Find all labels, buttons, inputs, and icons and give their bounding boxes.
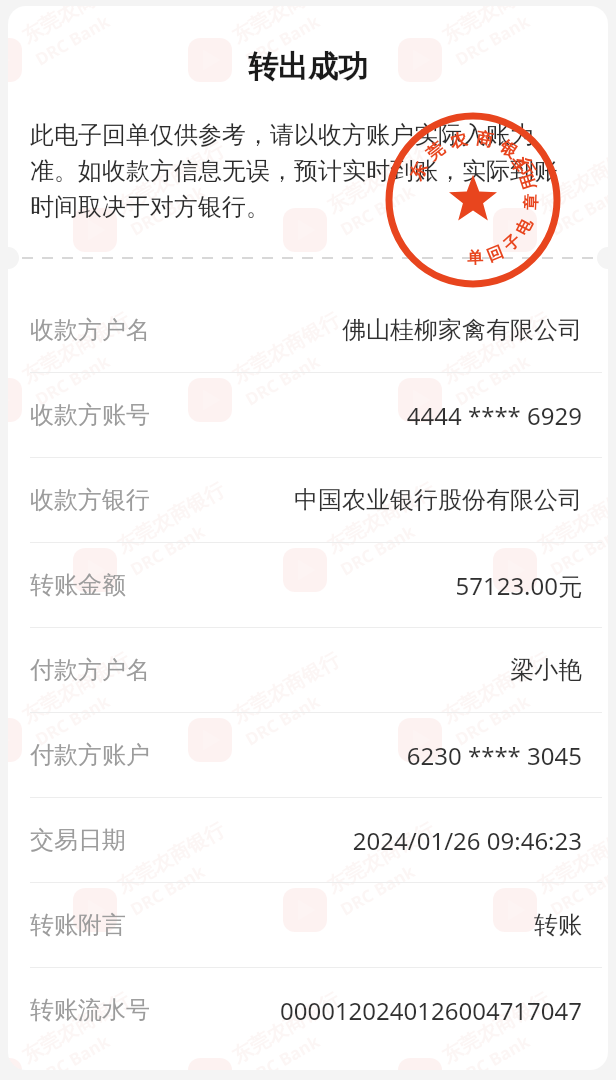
staticText: 付款方户名 [30,655,150,685]
staticText: 东莞农商银行 [227,6,344,49]
staticText: DRC Bank [31,1029,114,1070]
staticText: 子 [499,230,525,256]
staticText: DRC Bank [546,179,608,241]
staticText: DRC Bank [546,519,608,581]
staticText: DRC Bank [451,1029,534,1070]
button[interactable]: 交易日期 [8,798,608,882]
staticText: 东莞农商银行 [112,137,229,219]
staticText: 梁小艳 [510,655,582,685]
staticText: DRC Bank [126,519,209,581]
staticText: DRC Bank [241,689,324,751]
staticText: 东莞农商银行 [437,307,554,389]
staticText: 东莞农商银行 [437,6,554,49]
staticText: DRC Bank [126,859,209,921]
staticText: DRC Bank [31,349,114,411]
staticText: DRC Bank [241,1029,324,1070]
staticText: 中国农业银行股份有限公司 [294,485,582,515]
other: 电子回单专用章 [383,110,563,290]
staticText: DRC Bank [336,519,419,581]
staticText: 专 [506,151,532,176]
staticText: DRC Bank [451,689,534,751]
staticText: 4444 **** 6929 [406,399,582,432]
staticText: 东莞农商银行 [532,817,608,899]
button[interactable]: 收款方户名 [8,288,608,372]
staticText: 收款方户名 [30,315,150,345]
staticText: 此电子回单仅供参考，请以收方账户实际入账为 [30,120,534,150]
staticText: 转账附言 [30,910,126,940]
staticText: 东莞农商银行 [17,307,134,389]
staticText: 电 [511,215,537,239]
button[interactable]: 付款方户名 [8,628,608,712]
staticText: 东莞农商银行 [17,647,134,729]
staticText: 转账金额 [30,570,126,600]
staticText: 东莞农商银行 [227,987,344,1069]
staticText: 转账 [534,910,582,940]
staticText: 0000120240126004717047 [279,994,582,1027]
staticText: 东莞农商银行 [112,477,229,559]
staticText: 农 [448,128,469,153]
staticText: 东莞农商银行 [227,647,344,729]
staticText: DRC Bank [451,349,534,411]
button[interactable]: 收款方银行 [8,458,608,542]
staticText: 单 [467,248,483,268]
staticText: DRC Bank [451,9,534,71]
staticText: 东莞农商银行 [17,987,134,1069]
staticText: 佛山桂柳家禽有限公司 [342,315,582,345]
staticText: 交易日期 [30,825,126,855]
staticText: DRC Bank [546,859,608,921]
staticText: 转账流水号 [30,995,150,1025]
button[interactable]: 收款方账号 [8,373,608,457]
staticText: DRC Bank [31,689,114,751]
staticText: 东莞农商银行 [532,137,608,219]
staticText: 行 [513,155,540,180]
staticText: 东莞农商银行 [322,817,439,899]
staticText: 付款方账户 [30,740,150,770]
button[interactable]: 转账附言 [8,883,608,967]
staticText: 收款方银行 [30,485,150,515]
staticText: DRC Bank [241,9,324,71]
staticText: 商 [474,128,495,151]
staticText: 银 [496,136,521,163]
staticText: 2024/01/26 09:46:23 [352,824,582,857]
staticText: DRC Bank [336,859,419,921]
staticText: DRC Bank [31,9,114,71]
staticText: 东莞农商银行 [112,817,229,899]
staticText: 时间取决于对方银行。 [30,192,270,222]
staticText: 东莞农商银行 [322,137,439,219]
staticText: 东莞农商银行 [437,647,554,729]
staticText: 东莞农商银行 [17,6,134,49]
staticText: 准。如收款方信息无误，预计实时到账，实际到账 [30,156,558,186]
staticText: 东莞农商银行 [322,477,439,559]
staticText: DRC Bank [336,179,419,241]
staticText: 收款方账号 [30,400,150,430]
button[interactable]: 转账流水号 [8,968,608,1052]
staticText: 57123.00元 [455,569,582,602]
staticText: 东 [405,159,432,184]
staticText: 用 [516,171,540,193]
staticText: 转出成功 [8,48,608,86]
staticText: 章 [521,194,541,210]
staticText: 东莞农商银行 [227,307,344,389]
staticText: 6230 **** 3045 [406,739,582,772]
staticText: DRC Bank [126,179,209,241]
staticText: DRC Bank [241,349,324,411]
staticText: 莞 [422,138,449,165]
button[interactable]: 转账金额 [8,543,608,627]
button[interactable]: 付款方账户 [8,713,608,797]
staticText: 东莞农商银行 [437,987,554,1069]
staticText: 东莞农商银行 [532,477,608,559]
staticText: 回 [484,242,506,266]
